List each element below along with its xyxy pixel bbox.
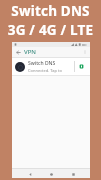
staticText: Switch DNS (28, 60, 56, 67)
button[interactable]: More options (81, 48, 89, 56)
button[interactable]: Back (26, 170, 34, 178)
staticText: Switch DNS (0, 2, 101, 20)
button[interactable]: Back (14, 48, 22, 56)
button[interactable]: Home (47, 170, 55, 178)
button[interactable]: Recent apps (69, 170, 77, 178)
staticText: 3G / 4G / LTE (0, 21, 101, 39)
staticText: Connected. Tap to disconnect. (28, 68, 74, 73)
staticText: VPN (24, 48, 37, 56)
button[interactable]: Settings (77, 62, 86, 71)
button[interactable]: Switch DNS (12, 58, 90, 75)
